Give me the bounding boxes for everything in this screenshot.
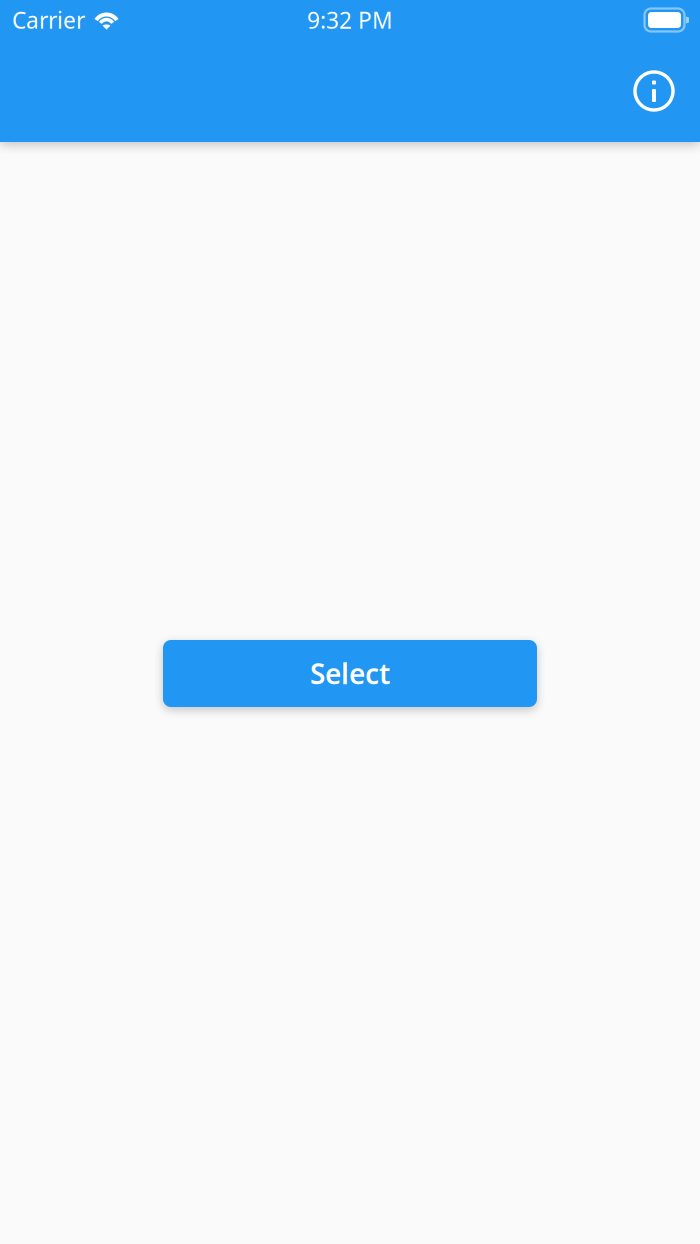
button[interactable]: Select <box>163 640 537 707</box>
staticText: Carrier <box>12 5 85 35</box>
staticText: 9:32 PM <box>307 5 393 35</box>
button[interactable]: Info <box>632 69 700 113</box>
staticText: Select <box>310 655 390 692</box>
